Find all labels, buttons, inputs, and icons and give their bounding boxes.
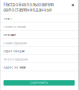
staticText: Сеть кафе xyxy=(3,33,16,36)
staticText: Название организации xyxy=(3,25,25,28)
staticText: Название подразделения xyxy=(3,42,26,45)
staticText: Адрес не указан xyxy=(3,66,26,69)
staticText: Тип места подразделения xyxy=(3,58,27,61)
button[interactable]: СОХРАНИТЬ xyxy=(3,80,75,86)
staticText: СОХРАНИТЬ xyxy=(30,81,48,84)
staticText: сопоставления данных xyxy=(3,7,51,13)
staticText: Настройка пользователя xyxy=(3,2,53,7)
button[interactable]: Закрыть xyxy=(70,3,75,8)
staticText: Текст xyxy=(3,17,11,20)
staticText: Имя xyxy=(3,9,8,12)
staticText: * xyxy=(9,8,11,12)
staticText: Отдел продаж xyxy=(3,50,24,53)
